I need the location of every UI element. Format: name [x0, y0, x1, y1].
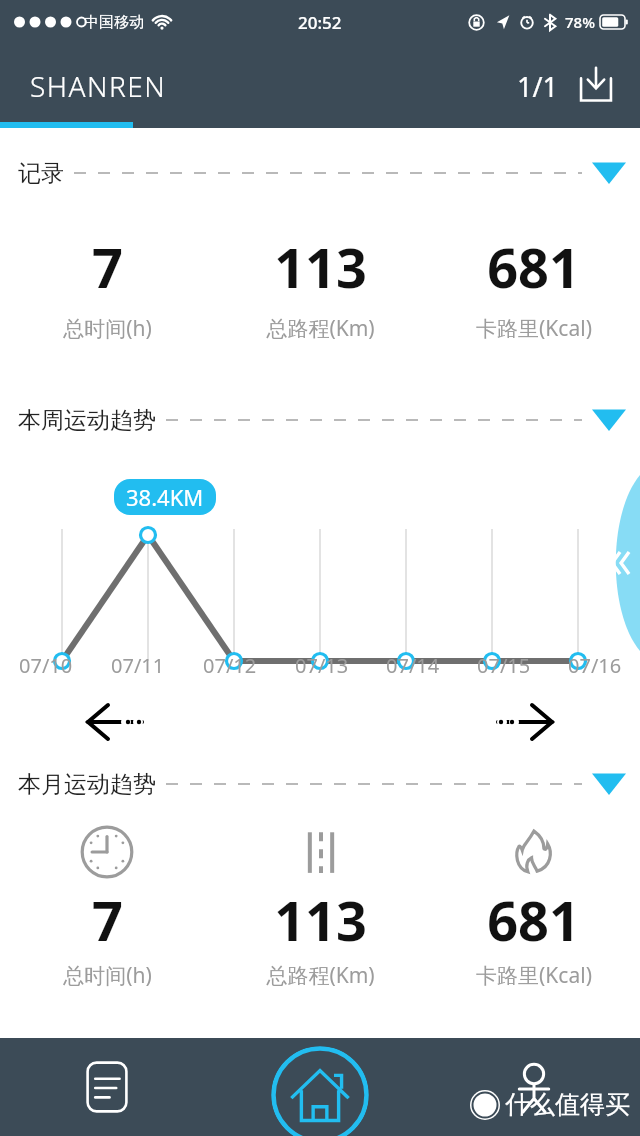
button[interactable]: Records — [71, 1051, 143, 1123]
button[interactable]: Next week — [486, 699, 560, 745]
staticText: 总时间(h) — [63, 314, 152, 343]
staticText: 7 — [92, 883, 123, 957]
button[interactable]: 113 — [214, 230, 427, 343]
staticText: 20:52 — [298, 11, 342, 34]
staticText: 卡路里(Kcal) — [476, 961, 592, 990]
staticText: 本月运动趋势 — [18, 770, 156, 799]
button[interactable]: Profile — [498, 1051, 570, 1123]
staticText: 总路程(Km) — [266, 961, 375, 990]
staticText: 07/11 — [111, 652, 165, 679]
button[interactable]: Download — [572, 62, 620, 110]
button[interactable]: 7 — [0, 823, 214, 990]
staticText: 1/1 — [517, 68, 558, 105]
staticText: 681 — [487, 230, 580, 304]
staticText: 记录 — [18, 159, 64, 188]
staticText: 总时间(h) — [63, 961, 152, 990]
button[interactable]: Previous week — [80, 699, 154, 745]
button[interactable]: 本月运动趋势 — [18, 761, 626, 807]
staticText: 07/10 — [19, 652, 73, 679]
button[interactable]: 38.4KM — [126, 482, 204, 512]
button[interactable]: Expand panel — [606, 475, 640, 651]
button[interactable]: 7 — [0, 230, 214, 343]
staticText: 07/13 — [295, 652, 349, 679]
button[interactable]: 681 — [427, 230, 640, 343]
staticText: 什么值得买 — [505, 1089, 630, 1120]
staticText: 07/16 — [568, 652, 622, 679]
staticText: 78% — [565, 12, 595, 32]
button[interactable]: 记录 — [18, 150, 626, 196]
button[interactable]: 681 — [427, 823, 640, 990]
staticText: 本周运动趋势 — [18, 406, 156, 435]
button[interactable]: 本周运动趋势 — [18, 397, 626, 443]
staticText: 38.4KM — [126, 482, 204, 512]
button[interactable]: 113 — [214, 823, 427, 990]
staticText: 总路程(Km) — [266, 314, 375, 343]
staticText: 681 — [487, 883, 580, 957]
staticText: 7 — [92, 230, 123, 304]
staticText: 中国移动 — [84, 13, 144, 32]
button[interactable]: Home — [271, 1046, 369, 1136]
staticText: 113 — [274, 883, 367, 957]
staticText: 113 — [274, 230, 367, 304]
staticText: SHANREN — [30, 67, 167, 105]
staticText: 07/12 — [203, 652, 257, 679]
staticText: 07/15 — [477, 652, 531, 679]
staticText: 卡路里(Kcal) — [476, 314, 592, 343]
staticText: 07/14 — [386, 652, 440, 679]
